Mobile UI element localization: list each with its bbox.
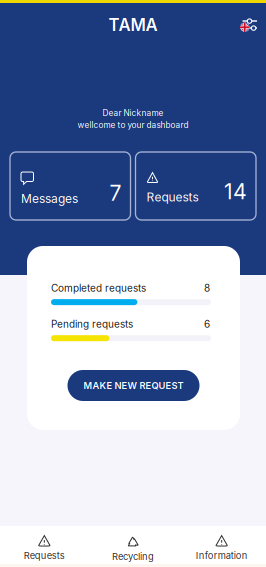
- button[interactable]: Messages: [10, 152, 130, 220]
- button[interactable]: MAKE NEW REQUEST: [67, 370, 199, 401]
- staticText: Completed requests: [51, 282, 146, 294]
- staticText: 7: [109, 180, 121, 206]
- staticText: wellcome to your dashboard: [77, 120, 188, 130]
- staticText: Recycling: [112, 551, 154, 562]
- button[interactable]: Language and settings: [233, 12, 261, 38]
- button[interactable]: Requests: [0, 526, 89, 564]
- staticText: MAKE NEW REQUEST: [83, 380, 183, 391]
- staticText: 14: [224, 179, 247, 204]
- staticText: Dear Nickname: [102, 108, 163, 118]
- button[interactable]: Information: [177, 526, 266, 564]
- staticText: Messages: [21, 191, 78, 206]
- button[interactable]: Recycling: [89, 526, 177, 564]
- staticText: Pending requests: [51, 318, 133, 330]
- staticText: TAMA: [108, 15, 157, 35]
- staticText: Information: [196, 550, 248, 561]
- staticText: 6: [204, 318, 210, 330]
- staticText: 8: [204, 282, 210, 294]
- staticText: Requests: [24, 550, 65, 561]
- button[interactable]: Requests: [135, 152, 256, 220]
- staticText: Requests: [146, 190, 198, 204]
